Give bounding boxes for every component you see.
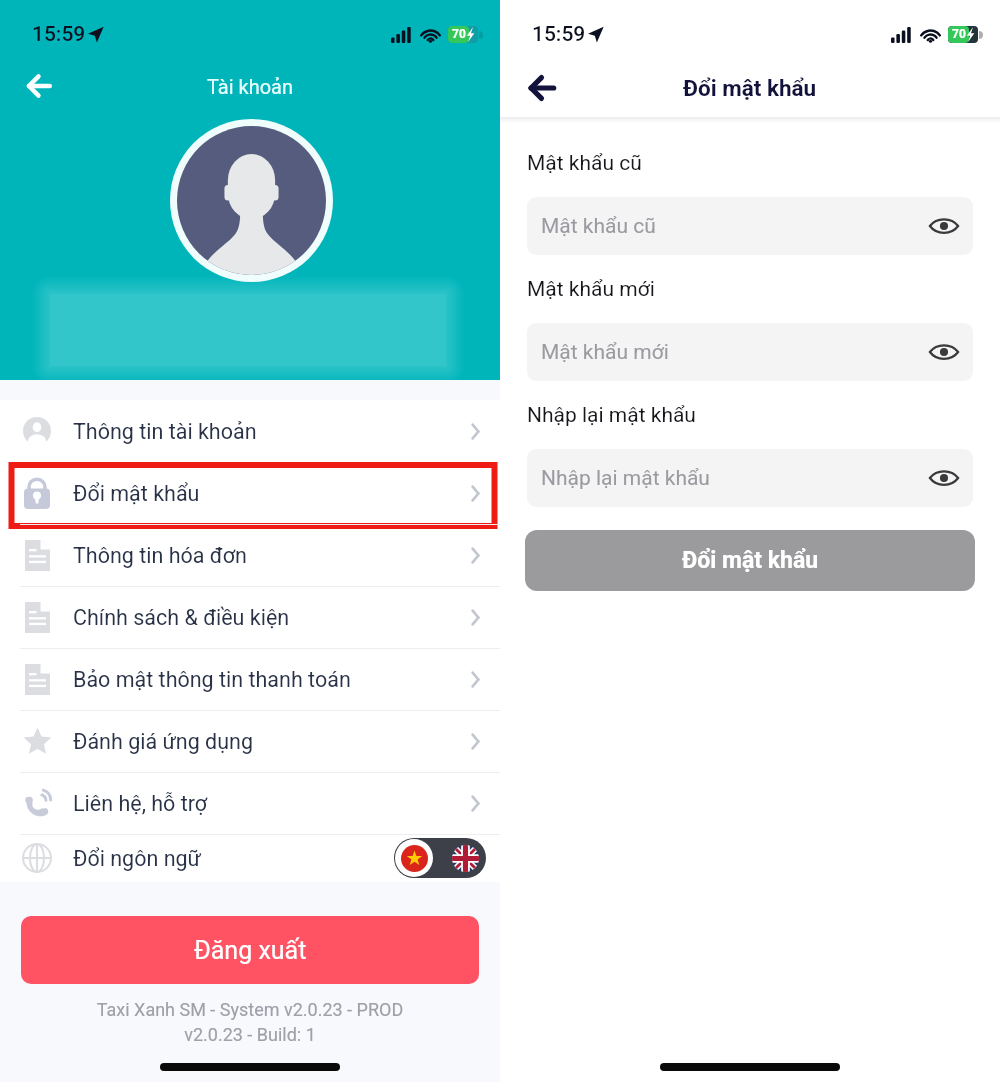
- button[interactable]: Show password: [927, 461, 961, 495]
- button[interactable]: Thông tin tài khoản: [0, 400, 500, 462]
- button[interactable]: Show password: [927, 335, 961, 369]
- staticText: Tài khoản: [207, 75, 294, 98]
- button[interactable]: Bảo mật thông tin thanh toán: [0, 648, 500, 710]
- staticText: Đổi mật khẩu: [73, 481, 200, 506]
- staticText: Mật khẩu mới: [541, 340, 669, 365]
- button[interactable]: Thông tin hóa đơn: [0, 524, 500, 586]
- staticText: Liên hệ, hỗ trợ: [73, 791, 208, 816]
- staticText: Taxi Xanh SM - System v2.0.23 - PROD: [0, 999, 500, 1020]
- staticText: Đổi mật khẩu: [682, 547, 819, 574]
- button[interactable]: Show password: [927, 209, 961, 243]
- button[interactable]: Chính sách & điều kiện: [0, 586, 500, 648]
- staticText: Thông tin tài khoản: [73, 419, 257, 444]
- staticText: 70: [952, 27, 966, 41]
- button[interactable]: Đánh giá ứng dụng: [0, 710, 500, 772]
- staticText: Đăng xuất: [194, 936, 307, 965]
- staticText: Mật khẩu mới: [527, 277, 655, 302]
- staticText: Đổi ngôn ngữ: [73, 846, 201, 871]
- staticText: 70: [452, 27, 466, 41]
- button[interactable]: Đổi mật khẩu: [525, 530, 975, 591]
- staticText: Mật khẩu cũ: [541, 214, 656, 239]
- staticText: Nhập lại mật khẩu: [527, 403, 696, 428]
- button[interactable]: Đổi mật khẩu: [0, 462, 500, 524]
- staticText: 15:59: [532, 22, 586, 47]
- staticText: Mật khẩu cũ: [527, 151, 642, 176]
- staticText: v2.0.23 - Build: 1: [0, 1024, 500, 1045]
- staticText: Bảo mật thông tin thanh toán: [73, 667, 351, 692]
- button[interactable]: Back: [518, 64, 566, 112]
- button[interactable]: Đăng xuất: [21, 916, 479, 984]
- staticText: Thông tin hóa đơn: [73, 543, 247, 568]
- button[interactable]: Mật khẩu mới: [527, 323, 973, 381]
- button[interactable]: Back: [16, 63, 62, 109]
- staticText: Đổi mật khẩu: [683, 75, 817, 101]
- staticText: Nhập lại mật khẩu: [541, 466, 710, 491]
- staticText: 15:59: [32, 22, 86, 47]
- button[interactable]: Đổi ngôn ngữ: [0, 834, 500, 882]
- staticText: Chính sách & điều kiện: [73, 605, 290, 630]
- button[interactable]: Mật khẩu cũ: [527, 197, 973, 255]
- button[interactable]: Nhập lại mật khẩu: [527, 449, 973, 507]
- button[interactable]: Liên hệ, hỗ trợ: [0, 772, 500, 834]
- staticText: Đánh giá ứng dụng: [73, 729, 253, 754]
- button[interactable]: Change language: [394, 838, 486, 878]
